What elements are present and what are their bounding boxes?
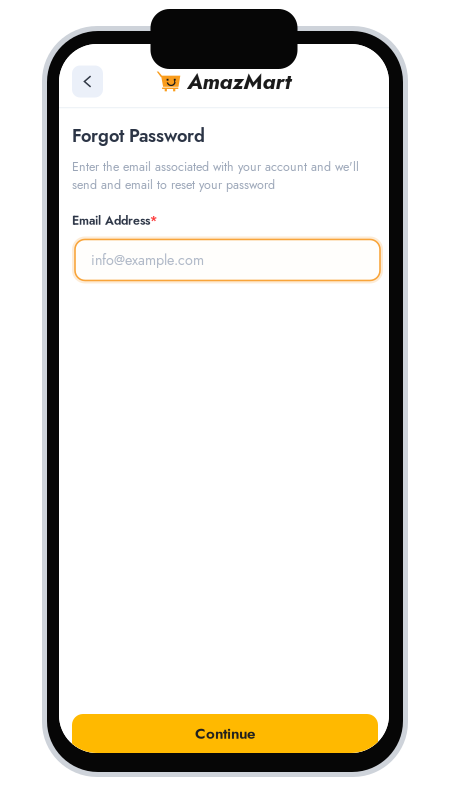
button[interactable]: Continue	[72, 714, 378, 753]
staticText: Forgot Password	[72, 122, 205, 149]
staticText: *	[150, 211, 157, 229]
staticText: Email Address	[72, 211, 150, 229]
staticText: info@example.com	[91, 250, 204, 270]
staticText: Enter the email associated with your acc…	[72, 158, 359, 193]
staticText: Continue	[195, 722, 255, 744]
button[interactable]: info@example.com	[72, 236, 383, 283]
button[interactable]: Back	[72, 65, 103, 97]
staticText: AmazMart	[187, 66, 291, 97]
